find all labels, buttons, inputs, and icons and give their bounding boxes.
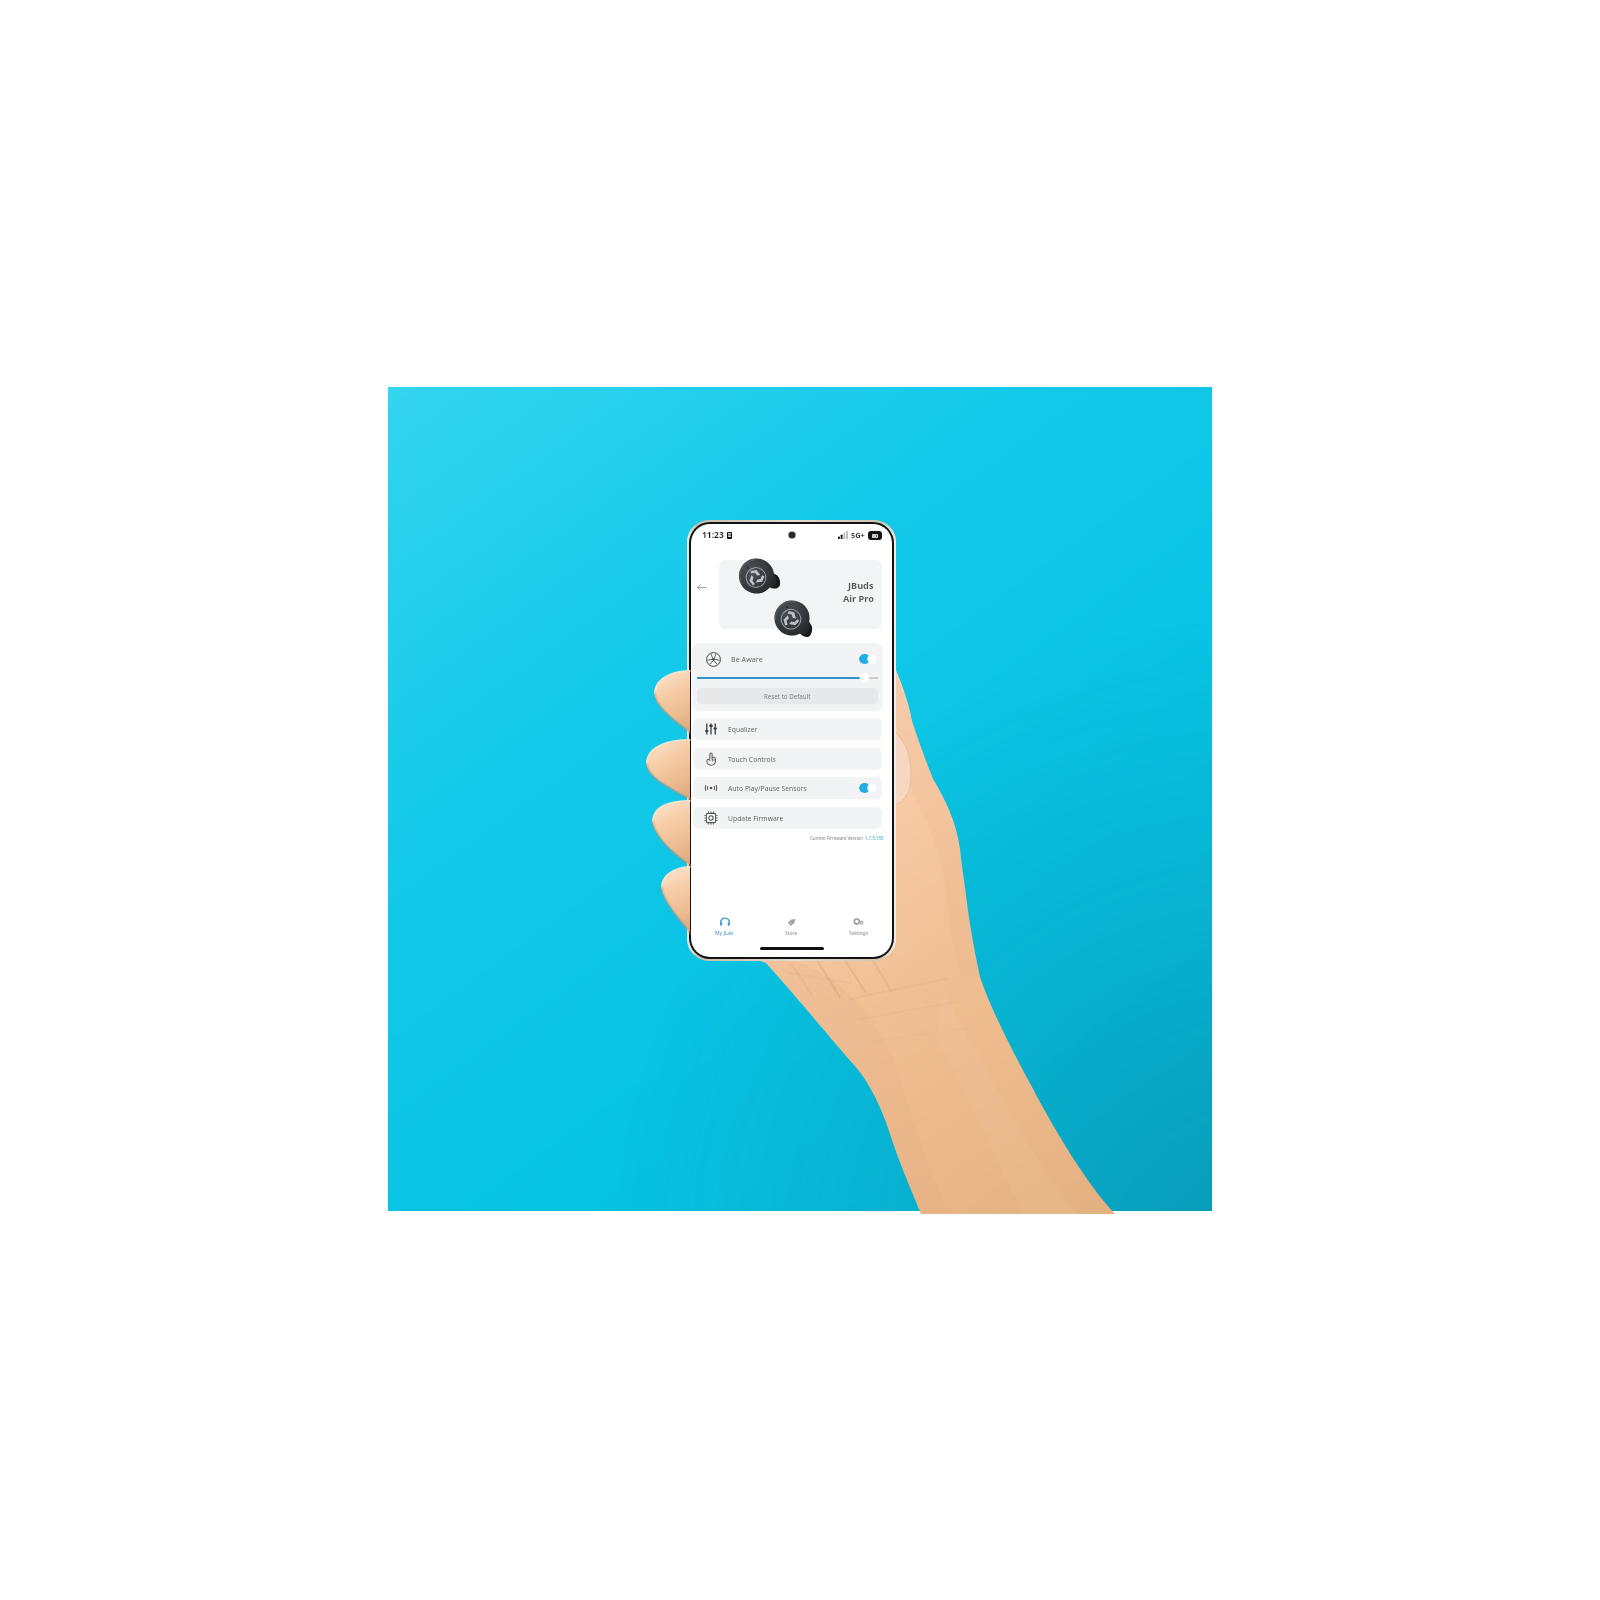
button[interactable]: Auto Play/Pause Sensors on	[859, 783, 877, 793]
button[interactable]: My JLab	[691, 911, 758, 941]
staticText: 80	[872, 532, 879, 539]
button[interactable]: Be Aware	[692, 645, 883, 673]
button[interactable]: Equalizer	[693, 718, 882, 740]
staticText: Touch Controls	[728, 755, 776, 764]
staticText: Reset to Default	[764, 692, 811, 700]
staticText: 5G+	[851, 530, 865, 540]
button[interactable]: Be Aware level	[692, 672, 883, 684]
button[interactable]: Touch Controls	[693, 748, 882, 770]
staticText: My JLab	[715, 930, 734, 937]
button[interactable]: Update Firmware	[693, 807, 882, 829]
button[interactable]: Store	[758, 911, 825, 941]
staticText: 1.7.5.155	[865, 835, 884, 841]
staticText: Update Firmware	[728, 814, 784, 823]
staticText: Store	[785, 930, 798, 937]
staticText: Equalizer	[728, 725, 758, 734]
button[interactable]: Be Aware on	[859, 654, 877, 664]
staticText: 11:23	[702, 529, 724, 541]
button[interactable]: Settings	[825, 911, 892, 941]
staticText: JBuds	[848, 579, 874, 592]
button[interactable]: Reset to Default	[697, 688, 878, 704]
staticText: Be Aware	[731, 654, 763, 664]
button[interactable]: Auto Play/Pause Sensors	[693, 777, 882, 799]
staticText: Current Firmware Version	[810, 835, 865, 841]
staticText: Settings	[849, 930, 869, 937]
button[interactable]: Back	[691, 577, 711, 597]
staticText: Auto Play/Pause Sensors	[728, 784, 807, 793]
staticText: Air Pro	[843, 592, 874, 605]
